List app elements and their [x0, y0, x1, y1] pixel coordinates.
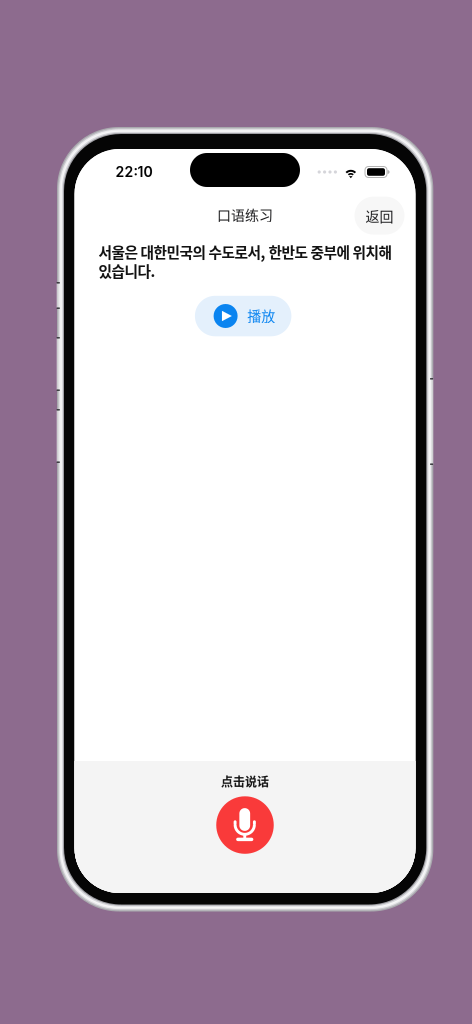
staticText: 口语练习	[217, 204, 273, 224]
button[interactable]: 播放	[195, 296, 291, 336]
staticText: 点击说话	[221, 772, 269, 790]
button[interactable]: Hold to speak	[216, 796, 274, 854]
staticText: 서울은 대한민국의 수도로서, 한반도 중부에 위치해 있습니다.	[98, 242, 391, 280]
staticText: 22:10	[115, 163, 152, 180]
staticText: 播放	[247, 305, 275, 325]
staticText: 返回	[365, 205, 393, 226]
button[interactable]: 返回	[354, 197, 404, 235]
